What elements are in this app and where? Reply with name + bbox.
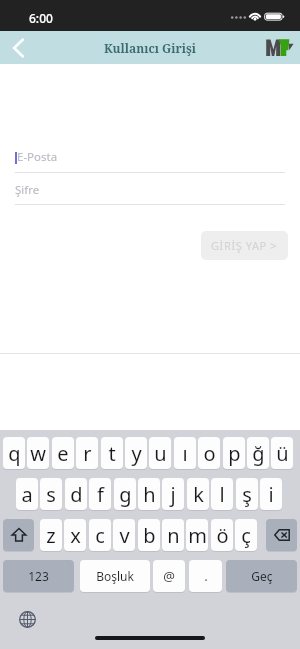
button[interactable]: u xyxy=(149,437,171,469)
button[interactable]: w xyxy=(27,437,49,469)
button[interactable]: c xyxy=(89,519,111,551)
button[interactable]: ı xyxy=(174,437,196,469)
staticText: p xyxy=(228,440,241,467)
staticText: y xyxy=(131,440,142,467)
button[interactable]: o xyxy=(198,437,220,469)
staticText: a xyxy=(21,481,33,508)
button[interactable]: 123 xyxy=(3,560,74,592)
button[interactable]: Change keyboard language xyxy=(19,611,36,628)
staticText: ı xyxy=(182,440,188,467)
button[interactable]: v xyxy=(113,519,135,551)
staticText: GİRİŞ YAP > xyxy=(211,238,278,253)
staticText: r xyxy=(83,440,92,467)
button[interactable]: @ xyxy=(153,560,185,592)
button[interactable]: r xyxy=(76,437,98,469)
staticText: t xyxy=(108,440,116,467)
button[interactable]: f xyxy=(89,478,111,510)
staticText: c xyxy=(95,522,105,549)
button[interactable]: Back xyxy=(1,31,35,64)
button[interactable]: h xyxy=(138,478,160,510)
button[interactable]: E-Posta xyxy=(15,148,285,172)
staticText: 6:00 xyxy=(29,10,53,26)
staticText: . xyxy=(204,567,208,585)
staticText: 123 xyxy=(28,568,49,584)
button[interactable]: a xyxy=(16,478,38,510)
button[interactable]: e xyxy=(52,437,74,469)
button[interactable]: Şifre xyxy=(15,181,285,205)
staticText: o xyxy=(203,440,216,467)
button[interactable]: q xyxy=(3,437,25,469)
other: Backspace xyxy=(274,529,290,541)
staticText: ç xyxy=(241,522,251,549)
button[interactable]: b xyxy=(138,519,160,551)
button[interactable]: Geç xyxy=(226,560,297,592)
staticText: z xyxy=(46,522,56,549)
staticText: Şifre xyxy=(15,182,40,198)
button[interactable]: x xyxy=(64,519,86,551)
button[interactable]: z xyxy=(40,519,62,551)
staticText: b xyxy=(143,522,156,549)
button[interactable]: . xyxy=(189,560,222,592)
staticText: g xyxy=(119,481,132,508)
button[interactable]: s xyxy=(40,478,62,510)
button[interactable]: ğ xyxy=(247,437,269,469)
staticText: j xyxy=(170,481,176,508)
button[interactable]: m xyxy=(186,519,208,551)
button[interactable]: t xyxy=(101,437,123,469)
staticText: v xyxy=(119,522,130,549)
staticText: m xyxy=(188,522,207,549)
staticText: ü xyxy=(276,440,289,467)
staticText: ö xyxy=(216,522,229,549)
button[interactable]: GİRİŞ YAP > xyxy=(201,231,288,260)
staticText: i xyxy=(268,481,274,508)
staticText: x xyxy=(70,522,81,549)
button[interactable]: Shift xyxy=(3,519,34,551)
button[interactable]: ö xyxy=(211,519,233,551)
staticText: Geç xyxy=(251,568,273,584)
staticText: s xyxy=(46,481,56,508)
button[interactable]: d xyxy=(65,478,87,510)
button[interactable]: ş xyxy=(236,478,258,510)
button[interactable]: j xyxy=(162,478,184,510)
staticText: d xyxy=(70,481,83,508)
staticText: q xyxy=(8,440,21,467)
staticText: f xyxy=(97,481,104,508)
button[interactable]: l xyxy=(211,478,233,510)
button[interactable]: Boşluk xyxy=(80,560,150,592)
staticText: w xyxy=(30,440,46,467)
button[interactable]: i xyxy=(260,478,282,510)
staticText: Boşluk xyxy=(96,568,134,584)
staticText: n xyxy=(167,522,180,549)
button[interactable]: ç xyxy=(235,519,257,551)
button[interactable]: y xyxy=(125,437,147,469)
other: Shift xyxy=(12,528,26,542)
button[interactable]: n xyxy=(162,519,184,551)
staticText: ğ xyxy=(252,440,265,467)
staticText: @ xyxy=(163,567,175,585)
staticText: u xyxy=(154,440,167,467)
staticText: E-Posta xyxy=(17,149,58,165)
staticText: l xyxy=(219,481,225,508)
button[interactable]: Backspace xyxy=(266,519,297,551)
staticText: ş xyxy=(242,481,252,508)
staticText: e xyxy=(57,440,69,467)
staticText: k xyxy=(193,481,204,508)
button[interactable]: g xyxy=(114,478,136,510)
staticText: Kullanıcı Girişi xyxy=(104,40,197,56)
button[interactable]: k xyxy=(187,478,209,510)
staticText: h xyxy=(143,481,156,508)
button[interactable]: ü xyxy=(271,437,293,469)
button[interactable]: p xyxy=(223,437,245,469)
